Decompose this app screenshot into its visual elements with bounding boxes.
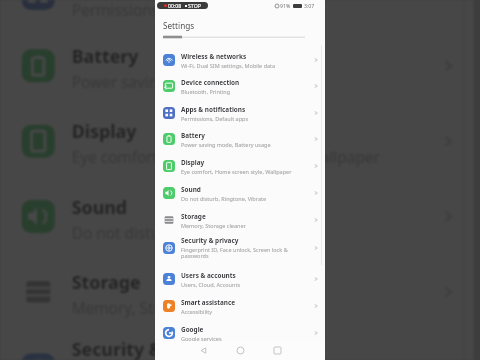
staticText: Security & privacy bbox=[181, 236, 239, 245]
staticText: Apps & notifications bbox=[181, 105, 246, 114]
button[interactable]: Security & privacy bbox=[155, 235, 325, 261]
staticText: Do not disturb, Ringtone, Vibrate bbox=[72, 222, 312, 241]
button[interactable]: Display bbox=[155, 153, 325, 179]
button[interactable]: Recents bbox=[266, 341, 288, 360]
staticText: Memory, Storage cleaner bbox=[181, 222, 246, 229]
staticText: Storage bbox=[72, 269, 141, 295]
staticText: STOP bbox=[188, 2, 201, 9]
staticText: 91% bbox=[280, 2, 291, 9]
staticText: Device connection bbox=[181, 78, 240, 87]
staticText: Battery bbox=[181, 131, 205, 140]
staticText: Battery bbox=[72, 43, 139, 69]
button[interactable]: Wireless & networks bbox=[155, 47, 325, 73]
staticText: Memory, Storage cleaner bbox=[72, 297, 253, 317]
staticText: Eye comfort, Home screen style, Wallpape… bbox=[72, 147, 381, 166]
staticText: Users & accounts bbox=[181, 271, 236, 280]
button[interactable]: Home bbox=[229, 341, 251, 360]
button[interactable]: Users & accounts bbox=[155, 266, 325, 292]
staticText: Accessibility bbox=[181, 308, 213, 315]
staticText: Display bbox=[181, 158, 205, 167]
button[interactable]: Security & privacy bbox=[0, 334, 473, 360]
staticText: Security & privacy bbox=[72, 336, 233, 360]
button[interactable]: Display bbox=[0, 105, 473, 177]
staticText: Do not disturb, Ringtone, Vibrate bbox=[181, 195, 267, 202]
staticText: Power saving mode, Battery usage bbox=[72, 71, 323, 91]
button[interactable]: Storage bbox=[155, 207, 325, 233]
button[interactable]: Device connection bbox=[155, 73, 325, 99]
staticText: Sound bbox=[72, 194, 127, 219]
button[interactable]: Sound bbox=[155, 180, 325, 206]
staticText: Settings bbox=[163, 20, 195, 31]
button[interactable]: Storage bbox=[0, 255, 473, 328]
staticText: Power saving mode, Battery usage bbox=[181, 141, 271, 148]
staticText: Smart assistance bbox=[181, 298, 236, 307]
staticText: Google services bbox=[181, 335, 222, 342]
staticText: Google bbox=[181, 325, 204, 334]
staticText: Display bbox=[72, 119, 139, 144]
button[interactable]: Apps & notifications bbox=[155, 100, 325, 126]
staticText: Wi-Fi, Dual SIM settings, Mobile data bbox=[181, 62, 276, 69]
staticText: Fingerprint ID, Face unlock, Screen lock… bbox=[181, 246, 288, 260]
staticText: Wireless & networks bbox=[181, 52, 247, 61]
staticText: 00:08 bbox=[168, 2, 182, 9]
staticText: Sound bbox=[181, 185, 201, 194]
button[interactable]: Apps & notifications bbox=[0, 0, 473, 29]
button[interactable]: Smart assistance bbox=[155, 293, 325, 319]
staticText: Permissions, Default apps bbox=[72, 0, 261, 18]
staticText: Storage bbox=[181, 212, 206, 221]
staticText: Eye comfort, Home screen style, Wallpape… bbox=[181, 168, 292, 175]
button[interactable]: Battery bbox=[155, 126, 325, 152]
staticText: Bluetooth, Printing bbox=[181, 88, 231, 95]
button[interactable]: Battery bbox=[0, 29, 473, 102]
staticText: Permissions, Default apps bbox=[181, 115, 249, 122]
staticText: Users, Cloud, Accounts bbox=[181, 281, 241, 288]
button[interactable]: Google bbox=[155, 320, 325, 346]
staticText: 3:07 bbox=[304, 2, 315, 9]
button[interactable]: Back bbox=[192, 341, 214, 360]
button[interactable]: Sound bbox=[0, 180, 473, 253]
